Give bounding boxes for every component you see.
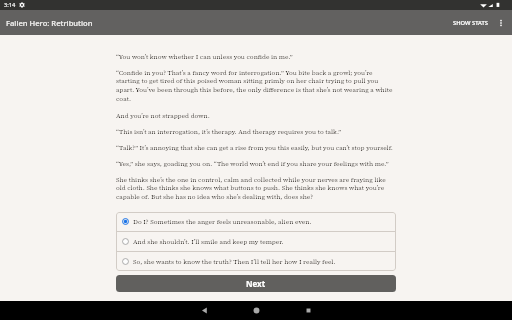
button[interactable]: SHOW STATS	[450, 14, 491, 32]
button[interactable]: Back	[178, 301, 230, 320]
button[interactable]: More options	[496, 10, 506, 35]
staticText: So, she wants to know the truth? Then I’…	[133, 257, 336, 266]
staticText: And she shouldn’t. I’ll smile and keep m…	[133, 237, 284, 246]
button[interactable]: And she shouldn’t. I’ll smile and keep m…	[116, 232, 396, 251]
staticText: SHOW STATS	[453, 19, 488, 27]
staticText: Next	[246, 278, 266, 289]
staticText: Do I? Sometimes the anger feels unreason…	[133, 217, 312, 226]
button[interactable]: Next	[116, 275, 396, 292]
staticText: 3:14	[4, 1, 16, 9]
staticText: “Talk?” It’s annoying that she can get a…	[116, 143, 393, 152]
staticText: “You won’t know whether I can unless you…	[116, 52, 293, 61]
staticText: She thinks she’s the one in control, cal…	[116, 175, 396, 202]
button[interactable]: Recents	[282, 301, 334, 320]
button[interactable]: So, she wants to know the truth? Then I’…	[116, 252, 396, 271]
staticText: “This isn’t an interrogation, it’s thera…	[116, 127, 342, 136]
button[interactable]: Home	[230, 301, 282, 320]
staticText: “Confide in you? That’s a fancy word for…	[116, 68, 396, 104]
staticText: Fallen Hero: Retribution	[6, 18, 93, 28]
staticText: And you’re not strapped down.	[116, 111, 210, 120]
button[interactable]: Do I? Sometimes the anger feels unreason…	[116, 212, 396, 231]
staticText: “Yes,” she says, goading you on. “The wo…	[116, 159, 389, 168]
